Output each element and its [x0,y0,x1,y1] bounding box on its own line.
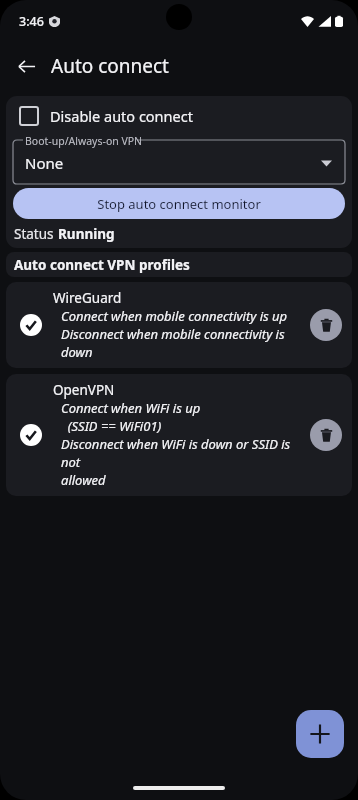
staticText: Running [58,225,115,243]
button[interactable]: OpenVPN [6,374,352,496]
staticText: Status [14,225,58,243]
staticText: Auto connect [51,53,169,79]
button[interactable]: Expand dropdown [313,150,339,176]
staticText: None [25,153,64,173]
button[interactable]: Disable auto connect [6,96,352,135]
button[interactable]: Delete OpenVPN profile [310,419,342,451]
staticText: 3:46 [19,13,44,30]
button[interactable]: Delete WireGuard profile [310,309,342,341]
staticText: Disconnect when WiFi is down or SSID is … [61,435,310,471]
staticText: OpenVPN [53,381,115,399]
staticText: (SSID == WiFi01) [61,417,162,435]
staticText: allowed [61,471,106,489]
staticText: Disconnect when mobile connectivity is d… [61,325,310,361]
staticText: Stop auto connect monitor [97,195,261,213]
staticText: Connect when mobile connectivity is up [61,307,288,325]
staticText: Connect when WiFi is up [61,399,201,417]
button[interactable]: Stop auto connect monitor [13,188,345,219]
button[interactable]: Back [9,49,43,83]
staticText: Boot-up/Always-on VPN [25,134,143,148]
staticText: Disable auto connect [50,106,193,126]
button[interactable]: WireGuard [6,282,352,368]
staticText: WireGuard [53,289,122,307]
staticText: Auto connect VPN profiles [14,256,190,274]
button[interactable]: Add auto connect profile [296,710,344,758]
